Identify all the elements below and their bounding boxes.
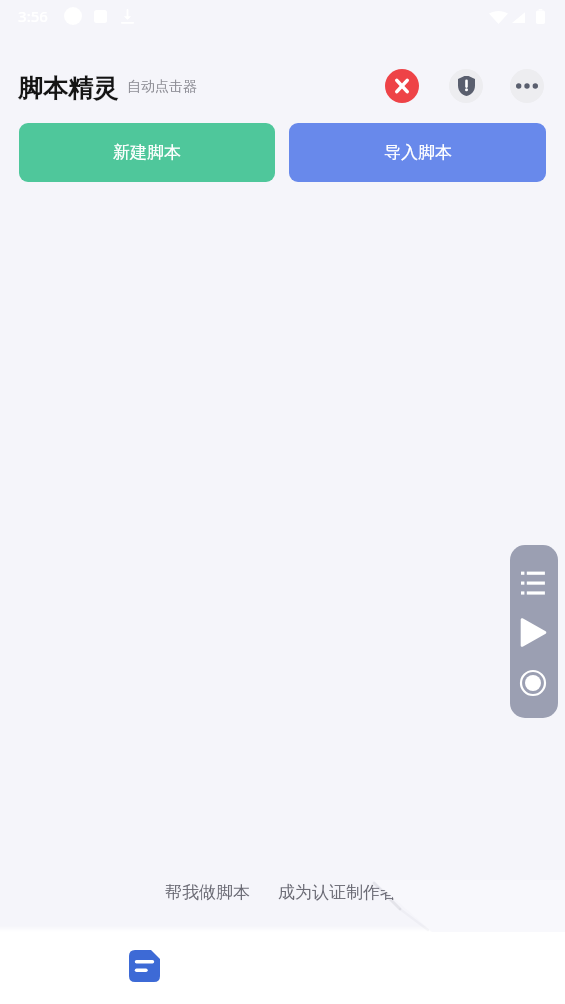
button[interactable]: Run script — [516, 616, 550, 650]
button[interactable]: 成为认证制作者 — [273, 877, 402, 908]
staticText: 新建脚本 — [113, 142, 181, 163]
staticText: 自动点击器 — [127, 78, 197, 96]
button[interactable]: Close — [385, 69, 419, 103]
staticText: 成为认证制作者 — [278, 882, 397, 903]
button[interactable]: 导入脚本 — [289, 123, 546, 182]
staticText: 导入脚本 — [384, 142, 452, 163]
staticText: 脚本精灵 — [18, 73, 118, 104]
button[interactable]: Script list — [517, 563, 551, 597]
button[interactable]: 新建脚本 — [19, 123, 275, 182]
button[interactable]: Security check — [449, 69, 483, 103]
button[interactable]: Record — [516, 666, 550, 700]
button[interactable]: Scripts document — [129, 950, 160, 982]
staticText: 3:56 — [18, 6, 48, 26]
button[interactable]: 帮我做脚本 — [160, 877, 255, 908]
staticText: 帮我做脚本 — [165, 882, 250, 903]
button[interactable]: More options — [510, 69, 544, 103]
